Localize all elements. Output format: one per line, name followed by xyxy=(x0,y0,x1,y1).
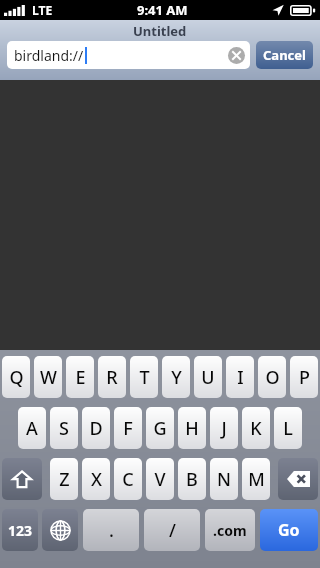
staticText: L xyxy=(283,416,293,441)
staticText: A xyxy=(26,416,38,441)
staticText: X xyxy=(91,467,102,492)
staticText: K xyxy=(250,416,262,441)
button[interactable]: Y xyxy=(162,356,190,398)
button[interactable]: G xyxy=(146,407,174,449)
button[interactable]: Backspace xyxy=(278,458,318,500)
staticText: J xyxy=(221,416,227,441)
button[interactable]: Clear text xyxy=(228,47,245,64)
button[interactable]: N xyxy=(210,458,238,500)
button[interactable]: birdland:// xyxy=(7,41,250,69)
button[interactable]: J xyxy=(210,407,238,449)
staticText: .com xyxy=(213,521,247,540)
staticText: W xyxy=(40,365,57,390)
staticText: S xyxy=(59,416,69,441)
button[interactable]: P xyxy=(290,356,318,398)
staticText: C xyxy=(122,467,134,492)
button[interactable]: S xyxy=(50,407,78,449)
button[interactable]: L xyxy=(274,407,302,449)
button[interactable]: Cancel xyxy=(256,41,313,69)
button[interactable]: Change keyboard xyxy=(42,509,78,551)
button[interactable]: M xyxy=(242,458,270,500)
button[interactable]: D xyxy=(82,407,110,449)
staticText: T xyxy=(139,365,150,390)
staticText: . xyxy=(109,518,114,543)
staticText: 123 xyxy=(8,521,33,540)
staticText: D xyxy=(89,416,103,441)
staticText: O xyxy=(265,365,280,390)
button[interactable]: X xyxy=(82,458,110,500)
staticText: Z xyxy=(59,467,70,492)
button[interactable]: F xyxy=(114,407,142,449)
button[interactable]: H xyxy=(178,407,206,449)
button[interactable]: / xyxy=(144,509,200,551)
button[interactable]: W xyxy=(34,356,62,398)
staticText: I xyxy=(237,365,244,390)
button[interactable]: Shift xyxy=(2,458,42,500)
button[interactable]: C xyxy=(114,458,142,500)
staticText: G xyxy=(153,416,167,441)
staticText: M xyxy=(248,467,265,492)
staticText: Cancel xyxy=(263,46,306,64)
staticText: Untitled xyxy=(133,22,187,40)
button[interactable]: R xyxy=(98,356,126,398)
staticText: Y xyxy=(171,365,182,390)
button[interactable]: Q xyxy=(2,356,30,398)
staticText: H xyxy=(185,416,199,441)
staticText: F xyxy=(123,416,133,441)
staticText: Q xyxy=(9,365,24,390)
staticText: N xyxy=(217,467,231,492)
button[interactable]: . xyxy=(83,509,139,551)
staticText: V xyxy=(154,467,166,492)
button[interactable]: I xyxy=(226,356,254,398)
button[interactable]: Go xyxy=(260,509,318,551)
button[interactable]: V xyxy=(146,458,174,500)
button[interactable]: .com xyxy=(205,509,255,551)
button[interactable]: O xyxy=(258,356,286,398)
staticText: LTE xyxy=(32,2,53,18)
staticText: Go xyxy=(278,519,300,541)
staticText: B xyxy=(186,467,198,492)
staticText: 9:41 AM xyxy=(137,1,188,19)
button[interactable]: 123 xyxy=(2,509,38,551)
button[interactable]: E xyxy=(66,356,94,398)
staticText: E xyxy=(75,365,86,390)
staticText: birdland:// xyxy=(14,46,84,65)
button[interactable]: T xyxy=(130,356,158,398)
staticText: P xyxy=(299,365,310,390)
button[interactable]: U xyxy=(194,356,222,398)
staticText: U xyxy=(201,365,215,390)
button[interactable]: Z xyxy=(50,458,78,500)
button[interactable]: A xyxy=(18,407,46,449)
staticText: / xyxy=(169,518,176,543)
button[interactable]: K xyxy=(242,407,270,449)
button[interactable]: B xyxy=(178,458,206,500)
staticText: R xyxy=(106,365,118,390)
